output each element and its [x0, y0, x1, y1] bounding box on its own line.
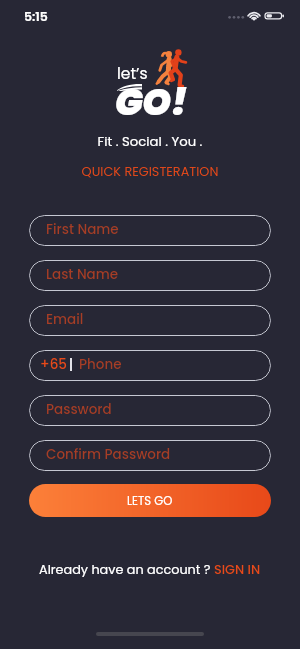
button[interactable]: Email	[29, 305, 271, 336]
button[interactable]: First Name	[29, 215, 271, 246]
staticText: Already have an account ?	[39, 561, 214, 579]
staticText: LETS GO	[127, 493, 173, 509]
staticText: Phone	[79, 355, 122, 374]
staticText: +65	[40, 355, 67, 374]
staticText: QUICK REGISTERATION	[0, 163, 300, 181]
staticText: First Name	[46, 220, 119, 239]
button[interactable]: Confirm Password	[29, 440, 271, 471]
staticText: 5:15	[24, 8, 48, 25]
button[interactable]: +65	[29, 350, 271, 381]
staticText: Fit . Social . You .	[0, 132, 300, 150]
button[interactable]: Last Name	[29, 260, 271, 291]
staticText: GO!	[115, 76, 187, 128]
button[interactable]: Password	[29, 395, 271, 426]
button[interactable]: LETS GO	[29, 484, 271, 517]
staticText: Email	[46, 310, 84, 329]
staticText: Confirm Password	[46, 445, 171, 464]
staticText: Last Name	[46, 265, 119, 284]
staticText: Password	[46, 400, 112, 419]
button[interactable]: SIGN IN	[214, 561, 261, 579]
staticText: let’s	[117, 63, 148, 85]
staticText: SIGN IN	[214, 561, 261, 579]
